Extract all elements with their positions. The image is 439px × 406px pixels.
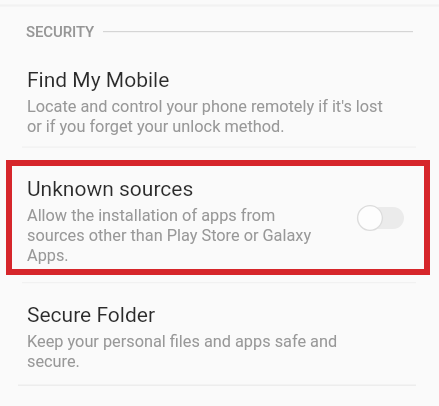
staticText: Find My Mobile	[27, 68, 170, 93]
button[interactable]: Find My Mobile	[0, 66, 439, 142]
staticText: Unknown sources	[27, 177, 194, 202]
staticText: Keep your personal files and apps safe a…	[27, 331, 338, 371]
button[interactable]: Unknown sources toggle	[356, 203, 404, 233]
staticText: Locate and control your phone remotely i…	[27, 96, 383, 136]
button[interactable]: Secure Folder	[0, 301, 439, 377]
staticText: SECURITY	[26, 23, 95, 41]
button[interactable]: SECURITY	[0, 22, 439, 42]
staticText: Secure Folder	[27, 303, 156, 328]
staticText: Allow the installation of apps from sour…	[27, 205, 312, 265]
button[interactable]: Unknown sources	[0, 175, 439, 271]
